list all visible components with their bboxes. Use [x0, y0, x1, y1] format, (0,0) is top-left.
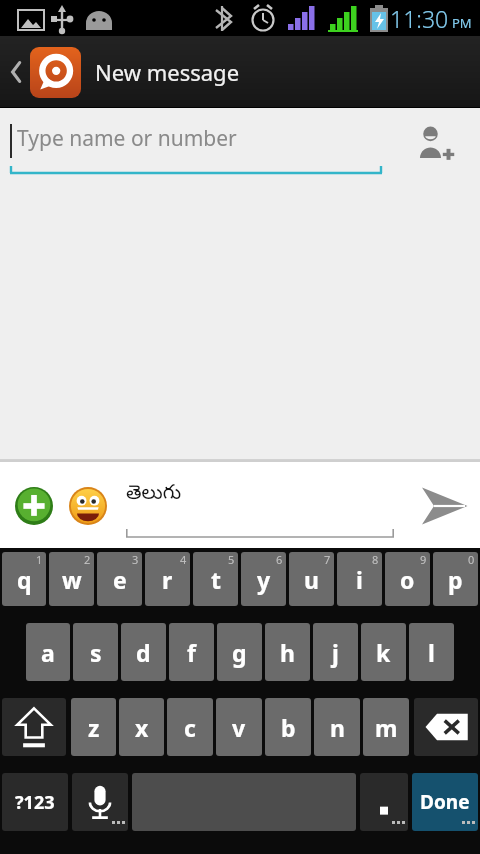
staticText: w [62, 564, 82, 595]
button[interactable]: l [409, 623, 454, 681]
staticText: o [400, 564, 415, 595]
staticText: f [187, 637, 196, 668]
staticText: 2 [84, 552, 91, 567]
button[interactable]: Add contact [404, 114, 464, 174]
staticText: k [376, 637, 391, 668]
staticText: 8 [372, 552, 379, 567]
button[interactable]: d [121, 623, 166, 681]
staticText: j [332, 637, 339, 668]
staticText: l [428, 637, 435, 668]
button[interactable]: h [265, 623, 310, 681]
button[interactable]: u [289, 552, 334, 606]
staticText: c [184, 712, 196, 743]
staticText: 3 [132, 552, 139, 567]
staticText: p [448, 564, 463, 595]
button[interactable]: k [361, 623, 406, 681]
button[interactable]: i [337, 552, 382, 606]
button[interactable]: Voice input [72, 773, 128, 831]
button[interactable]: t [193, 552, 238, 606]
staticText: i [356, 564, 363, 595]
button[interactable]: a [26, 623, 70, 681]
staticText: New message [95, 57, 240, 87]
button[interactable]: b [265, 698, 311, 756]
staticText: PM [452, 14, 472, 32]
staticText: 11:30 [390, 3, 449, 34]
button[interactable]: Period [360, 773, 408, 831]
staticText: x [135, 712, 149, 743]
staticText: a [41, 637, 55, 668]
staticText: h [280, 637, 295, 668]
staticText: m [375, 712, 398, 743]
staticText: z [88, 712, 100, 743]
button[interactable]: z [71, 698, 116, 756]
staticText: 4 [180, 552, 187, 567]
button[interactable]: q [2, 552, 46, 606]
button[interactable]: Shift [2, 698, 66, 756]
button[interactable]: r [145, 552, 190, 606]
button[interactable]: New message [0, 36, 480, 108]
staticText: 7 [324, 552, 331, 567]
staticText: Done [420, 789, 470, 815]
button[interactable]: Type name or number [10, 108, 382, 180]
button[interactable]: j [313, 623, 358, 681]
staticText: y [257, 564, 271, 595]
staticText: 5 [228, 552, 235, 567]
staticText: t [211, 564, 221, 595]
button[interactable]: Send [408, 464, 480, 548]
staticText: b [281, 712, 296, 743]
button[interactable]: y [241, 552, 286, 606]
button[interactable]: తెలుగు [126, 464, 408, 548]
button[interactable]: Add attachment [10, 482, 58, 530]
staticText: n [330, 712, 345, 743]
staticText: ?123 [15, 790, 55, 815]
button[interactable]: n [314, 698, 360, 756]
button[interactable]: w [49, 552, 94, 606]
button[interactable]: s [73, 623, 118, 681]
staticText: r [162, 564, 173, 595]
staticText: 6 [276, 552, 283, 567]
staticText: Type name or number [17, 124, 237, 153]
button[interactable]: ?123 [2, 773, 68, 831]
button[interactable]: c [167, 698, 213, 756]
staticText: e [113, 564, 127, 595]
staticText: g [232, 637, 247, 668]
button[interactable]: v [216, 698, 262, 756]
button[interactable]: o [385, 552, 430, 606]
button[interactable]: Insert emoji [64, 482, 112, 530]
staticText: u [304, 564, 319, 595]
button[interactable]: m [363, 698, 409, 756]
staticText: q [17, 564, 32, 595]
button[interactable]: p [433, 552, 478, 606]
staticText: 9 [420, 552, 427, 567]
button[interactable]: e [97, 552, 142, 606]
button[interactable]: f [169, 623, 214, 681]
button[interactable]: Backspace [414, 698, 478, 756]
button[interactable]: g [217, 623, 262, 681]
staticText: తెలుగు [126, 482, 182, 509]
staticText: s [90, 637, 102, 668]
button[interactable]: Done [412, 773, 478, 831]
staticText: d [136, 637, 151, 668]
staticText: 1 [36, 552, 43, 567]
staticText: 0 [468, 552, 475, 567]
staticText: v [232, 712, 246, 743]
button[interactable]: x [119, 698, 164, 756]
